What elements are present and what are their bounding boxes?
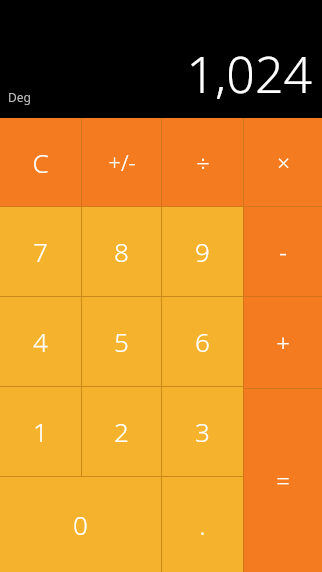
- button[interactable]: Decimal point: [162, 477, 243, 572]
- staticText: ÷: [196, 146, 210, 179]
- staticText: Deg: [8, 89, 31, 105]
- staticText: C: [32, 145, 49, 180]
- button[interactable]: 5: [82, 297, 161, 386]
- staticText: +/-: [108, 147, 136, 177]
- button[interactable]: 8: [82, 207, 161, 296]
- staticText: 9: [195, 234, 210, 269]
- button[interactable]: 0: [0, 477, 161, 572]
- button[interactable]: Minus: [244, 207, 322, 296]
- button[interactable]: Clear: [0, 118, 81, 206]
- staticText: 1,024: [186, 40, 312, 108]
- button[interactable]: 6: [162, 297, 243, 386]
- button[interactable]: 7: [0, 207, 81, 296]
- button[interactable]: 2: [82, 387, 161, 476]
- staticText: -: [279, 235, 287, 268]
- button[interactable]: 3: [162, 387, 243, 476]
- staticText: +: [276, 326, 290, 359]
- staticText: .: [199, 507, 206, 542]
- staticText: ×: [277, 147, 290, 177]
- button[interactable]: Plus minus: [82, 118, 161, 206]
- staticText: =: [276, 464, 290, 497]
- button[interactable]: 9: [162, 207, 243, 296]
- button[interactable]: Multiply: [244, 118, 322, 206]
- staticText: 6: [195, 324, 210, 359]
- staticText: 2: [114, 414, 129, 449]
- staticText: 5: [114, 324, 129, 359]
- staticText: 8: [114, 234, 129, 269]
- staticText: 0: [73, 507, 88, 542]
- button[interactable]: 4: [0, 297, 81, 386]
- staticText: 3: [195, 414, 210, 449]
- button[interactable]: Divide: [162, 118, 243, 206]
- button[interactable]: Equals: [244, 389, 322, 572]
- button[interactable]: Plus: [244, 297, 322, 388]
- button[interactable]: 1: [0, 387, 81, 476]
- staticText: 7: [33, 234, 48, 269]
- staticText: 1: [33, 414, 48, 449]
- staticText: 4: [33, 324, 48, 359]
